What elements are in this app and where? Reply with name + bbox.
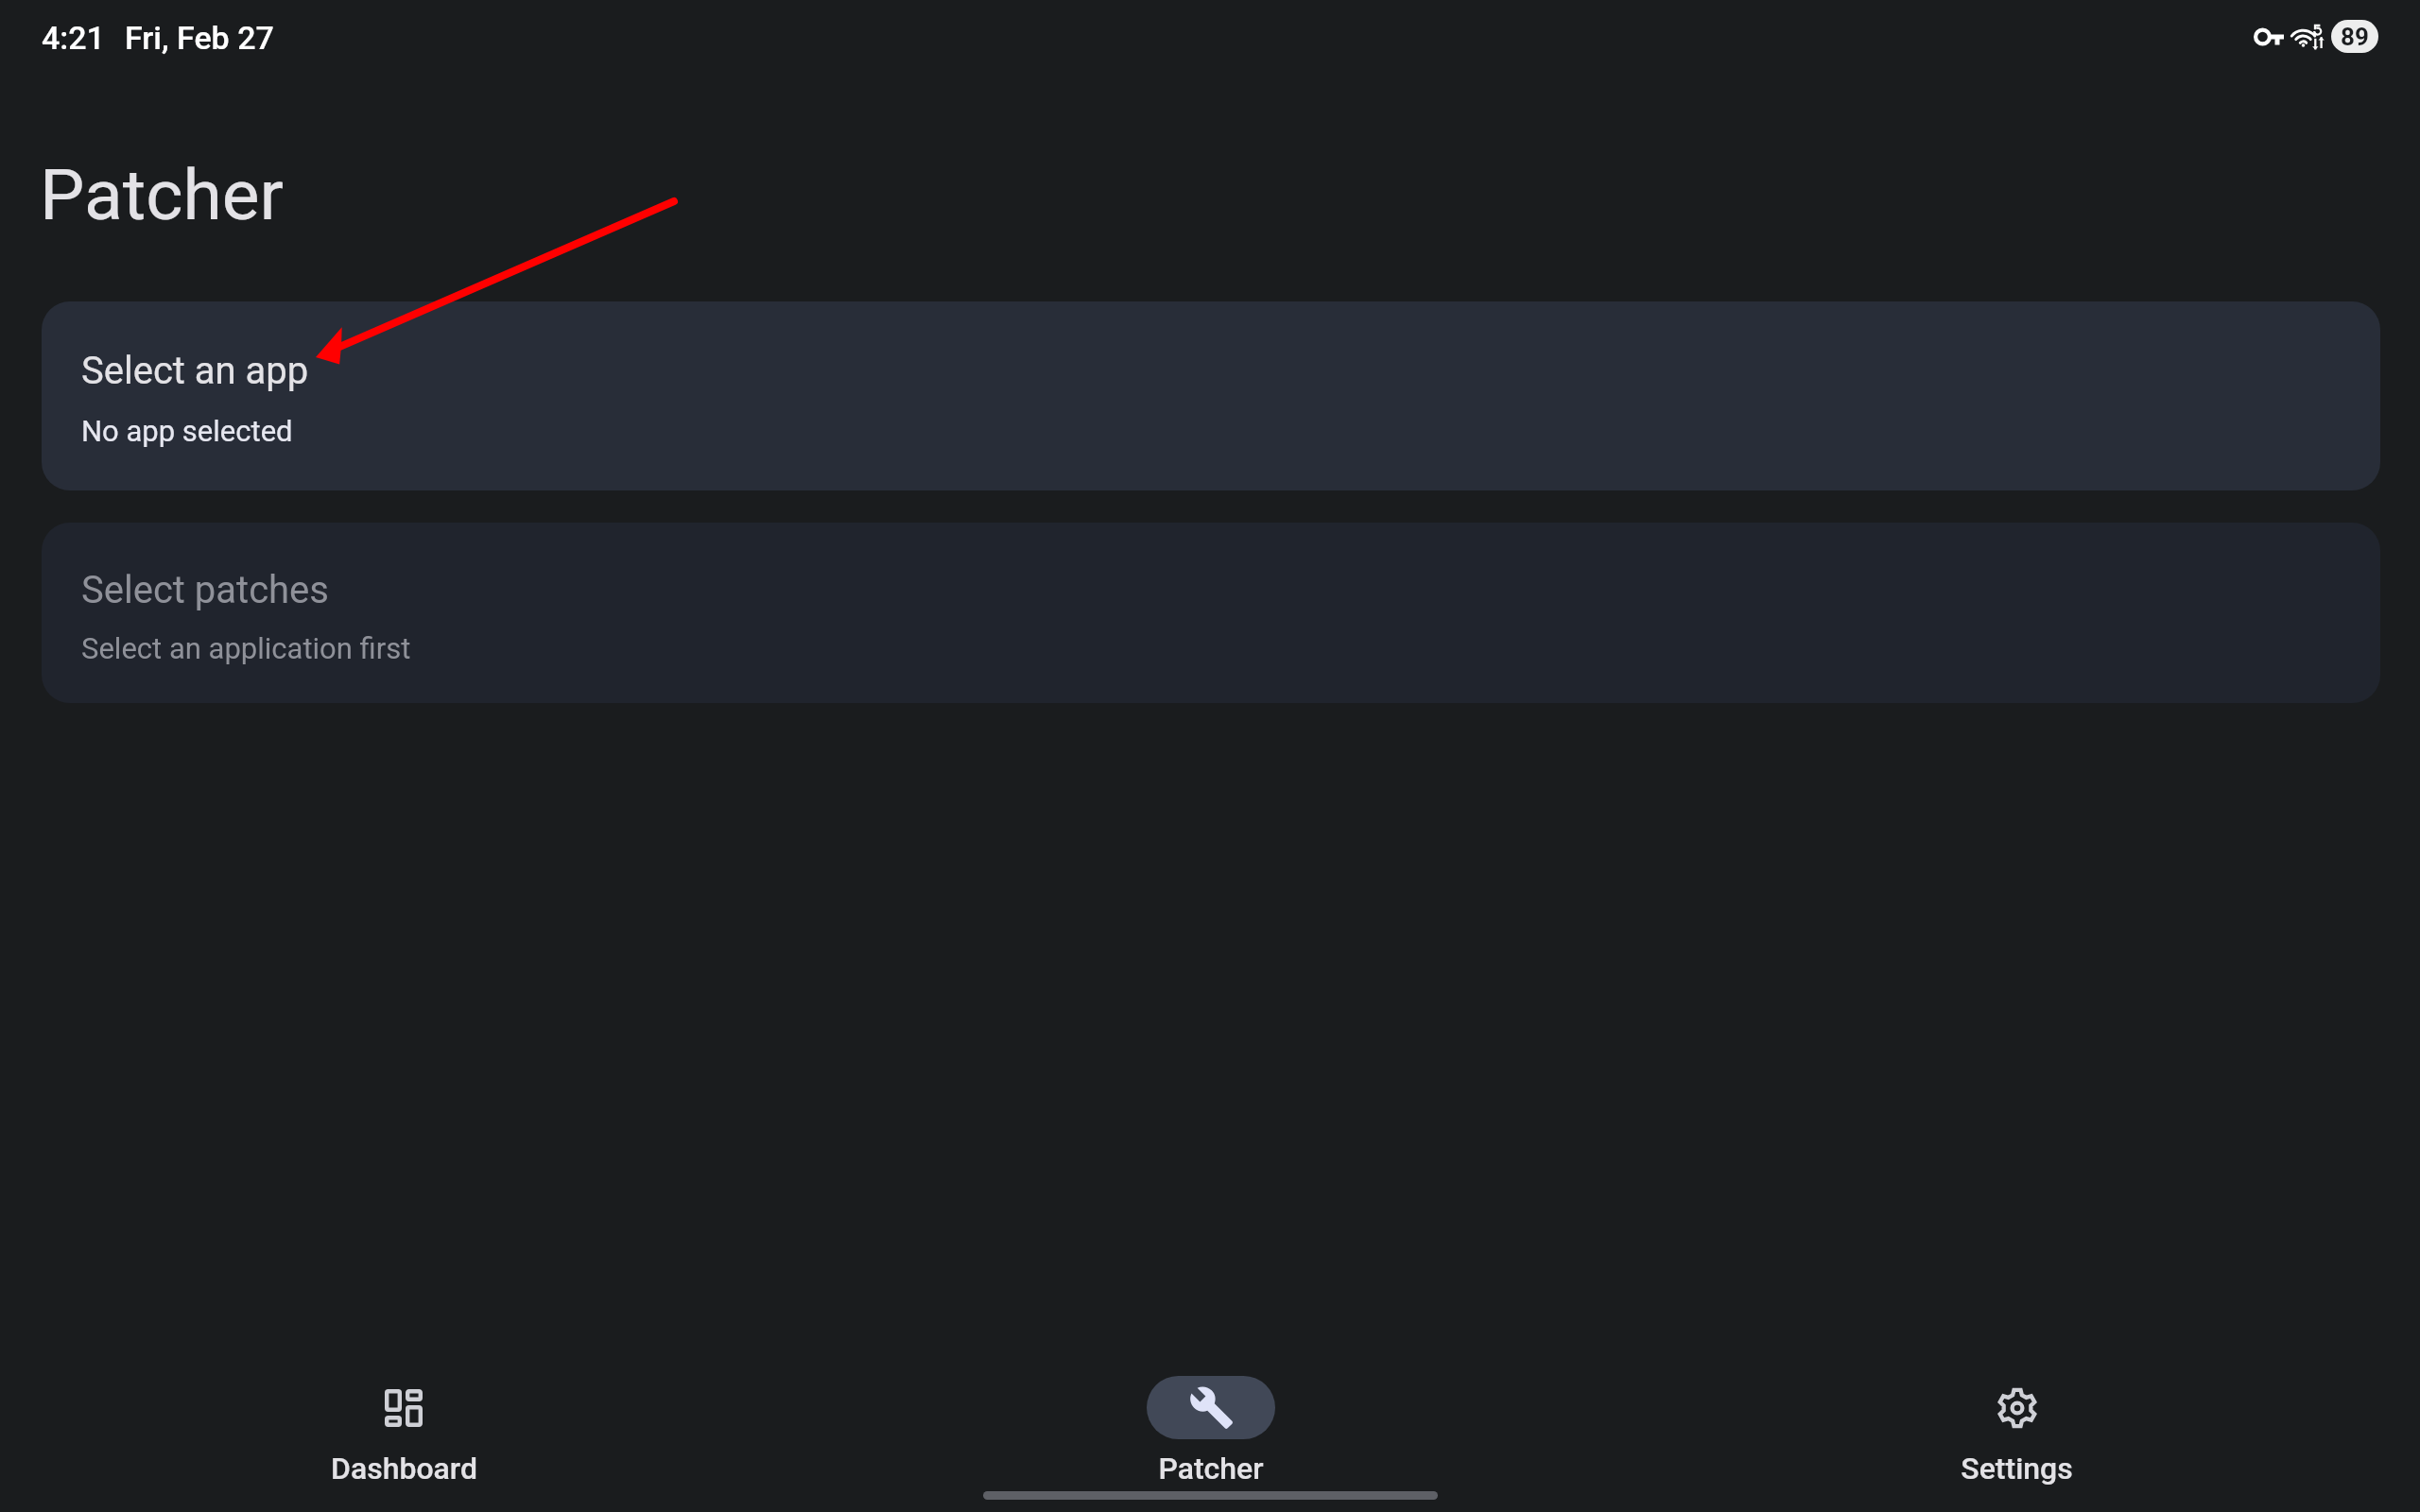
- button[interactable]: Dashboard: [0, 1323, 807, 1486]
- other: VPN active: [2254, 25, 2286, 51]
- staticText: Select patches: [81, 568, 329, 612]
- staticText: Dashboard: [331, 1451, 477, 1486]
- other: Wi-Fi signal: [2292, 23, 2325, 51]
- staticText: 89: [2341, 23, 2369, 51]
- button[interactable]: Select patches: [42, 523, 2380, 703]
- button[interactable]: Patcher: [807, 1323, 1614, 1486]
- staticText: Patcher: [1158, 1451, 1264, 1486]
- staticText: Settings: [1961, 1451, 2073, 1486]
- staticText: Select an app: [81, 349, 309, 393]
- staticText: Patcher: [40, 153, 284, 236]
- button[interactable]: Select an app: [42, 301, 2380, 490]
- staticText: 4:21: [42, 19, 105, 57]
- button[interactable]: Settings: [1614, 1323, 2420, 1486]
- staticText: Select an application first: [81, 631, 411, 665]
- staticText: Fri, Feb 27: [125, 19, 274, 57]
- staticText: No app selected: [81, 414, 293, 448]
